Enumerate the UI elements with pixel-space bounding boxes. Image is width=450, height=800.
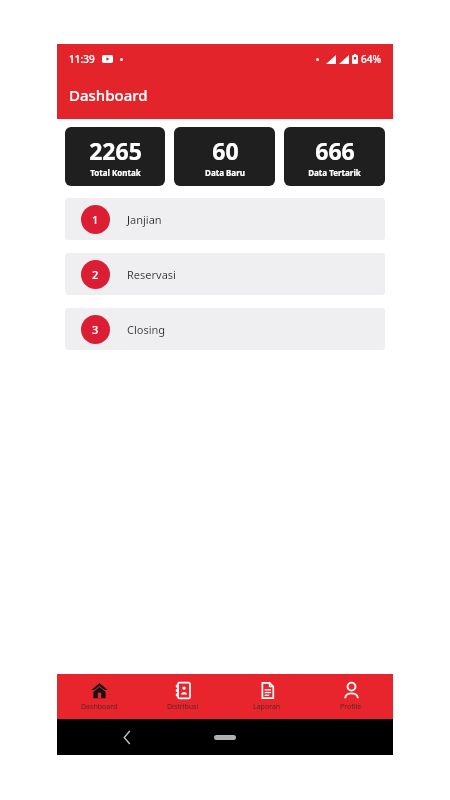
staticText: Dashboard — [81, 702, 118, 712]
staticText: 60 — [212, 135, 239, 166]
button[interactable]: 3 — [65, 308, 385, 350]
button[interactable]: Distribusi — [141, 674, 225, 719]
staticText: 666 — [315, 135, 355, 166]
other: Home — [214, 735, 236, 740]
button[interactable]: 666 — [284, 127, 385, 186]
staticText: Total Kontak — [90, 167, 141, 178]
button[interactable]: Dashboard — [57, 674, 141, 719]
staticText: 11:39 — [69, 52, 95, 66]
staticText: Data Baru — [205, 167, 245, 178]
button[interactable]: 2265 — [65, 127, 165, 186]
staticText: 3 — [92, 322, 99, 337]
button[interactable]: 60 — [174, 127, 275, 186]
staticText: Reservasi — [127, 267, 176, 282]
button[interactable]: 1 — [65, 198, 385, 240]
staticText: Closing — [127, 322, 166, 337]
staticText: Laporan — [253, 702, 281, 712]
button[interactable]: Laporan — [225, 674, 309, 719]
staticText: 2265 — [89, 135, 142, 166]
staticText: Dashboard — [69, 85, 148, 105]
staticText: Distribusi — [167, 702, 199, 712]
staticText: 2 — [92, 267, 99, 282]
staticText: 64% — [361, 52, 381, 66]
staticText: Profile — [340, 702, 362, 712]
staticText: Janjian — [127, 212, 162, 227]
staticText: Data Tertarik — [308, 167, 361, 178]
staticText: 1 — [92, 212, 99, 227]
button[interactable]: 2 — [65, 253, 385, 295]
button[interactable]: Profile — [309, 674, 393, 719]
other: Back — [123, 731, 131, 744]
